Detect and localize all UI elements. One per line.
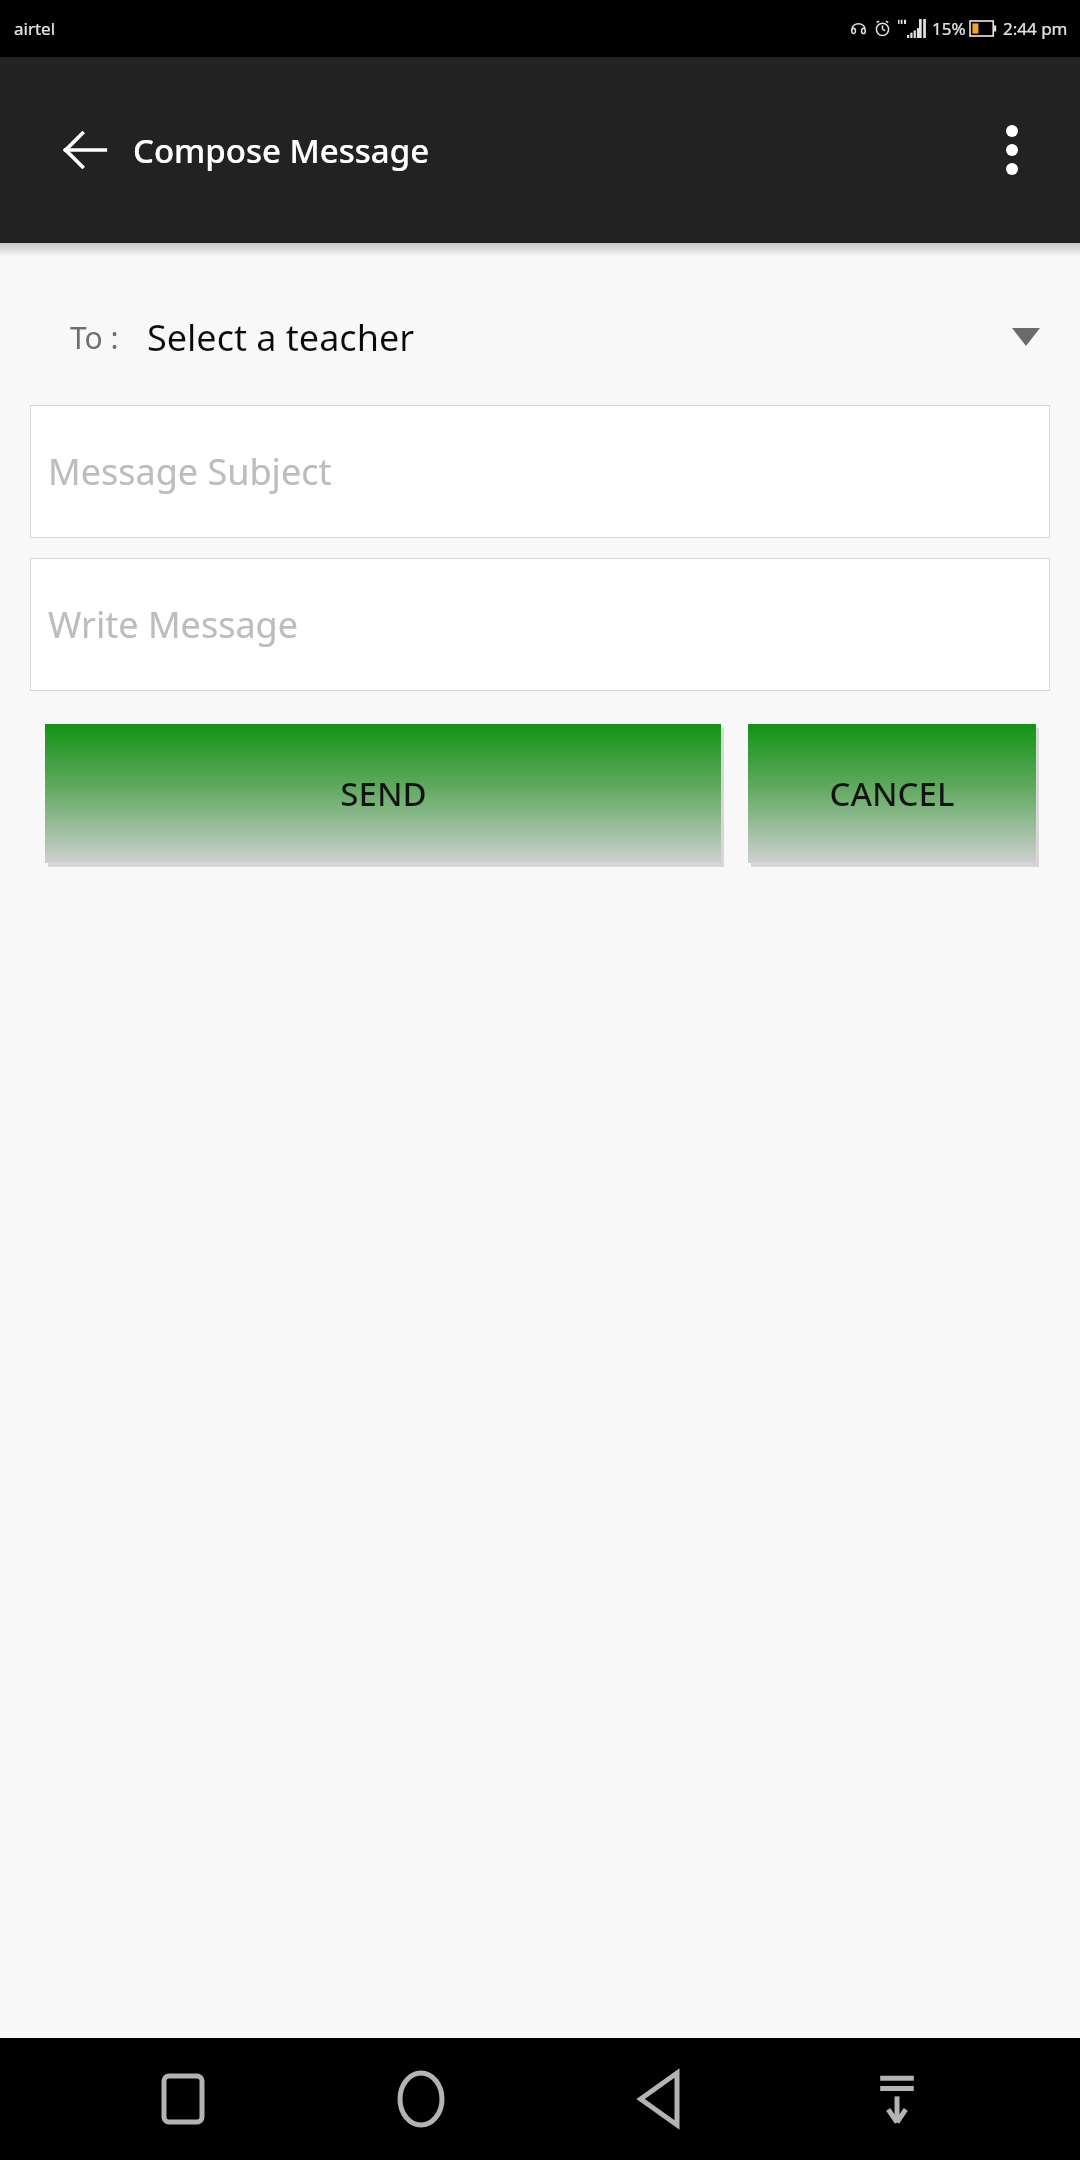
staticText: Write Message (48, 600, 299, 649)
staticText: SEND (340, 771, 427, 816)
button[interactable]: Back (45, 110, 125, 190)
button[interactable]: SEND (45, 724, 721, 863)
staticText: airtel (14, 17, 56, 40)
button[interactable]: Hide keyboard (842, 2044, 952, 2154)
staticText: 2:44 pm (1003, 17, 1068, 40)
staticText: Compose Message (133, 128, 430, 173)
button[interactable]: Home (366, 2044, 476, 2154)
button[interactable]: Message Subject (30, 405, 1050, 538)
staticText: CANCEL (829, 771, 955, 816)
button[interactable]: More options (972, 110, 1052, 190)
button[interactable]: Back (604, 2044, 714, 2154)
button[interactable]: Recents (128, 2044, 238, 2154)
staticText: 15% (932, 17, 966, 40)
button[interactable]: CANCEL (748, 724, 1036, 863)
button[interactable]: To : (0, 297, 1080, 377)
button[interactable]: Write Message (30, 558, 1050, 691)
staticText: Message Subject (48, 447, 332, 496)
staticText: To : (70, 317, 119, 358)
staticText: Select a teacher (147, 313, 415, 362)
